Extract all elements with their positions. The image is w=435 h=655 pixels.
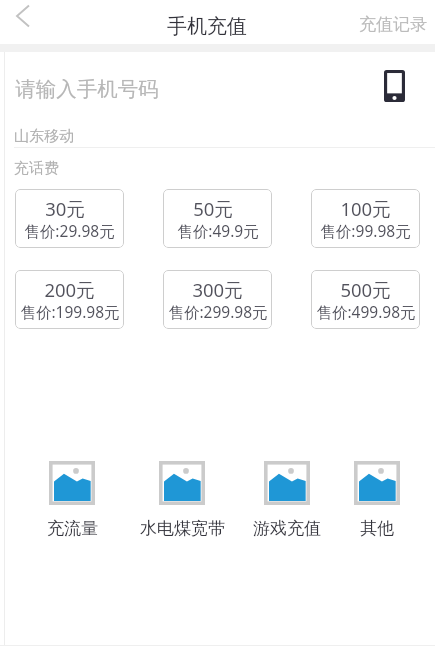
staticText: 其他 bbox=[360, 518, 394, 539]
staticText: 充话费 bbox=[14, 159, 59, 178]
button[interactable]: 30元 bbox=[15, 189, 124, 248]
button[interactable]: 500元 bbox=[311, 270, 420, 329]
staticText: 售价:499.98元 bbox=[316, 301, 416, 322]
button[interactable]: 其他 bbox=[327, 461, 427, 539]
staticText: 游戏充值 bbox=[253, 518, 321, 539]
button[interactable]: 100元 bbox=[311, 189, 420, 248]
staticText: 水电煤宽带 bbox=[140, 518, 225, 539]
button[interactable]: Back bbox=[0, 0, 46, 44]
button[interactable]: 游戏充值 bbox=[237, 461, 337, 539]
staticText: 售价:29.98元 bbox=[24, 220, 115, 241]
staticText: 售价:199.98元 bbox=[20, 301, 120, 322]
staticText: 手机充值 bbox=[167, 14, 247, 39]
button[interactable] bbox=[0, 52, 435, 120]
staticText: 30元 bbox=[45, 196, 85, 221]
button[interactable]: 水电煤宽带 bbox=[132, 461, 232, 539]
button[interactable]: 50元 bbox=[163, 189, 272, 248]
staticText: 300元 bbox=[192, 277, 243, 302]
button[interactable]: 200元 bbox=[15, 270, 124, 329]
staticText: 500元 bbox=[340, 277, 391, 302]
button[interactable]: 300元 bbox=[163, 270, 272, 329]
staticText: 山东移动 bbox=[14, 127, 74, 146]
staticText: 请输入手机号码 bbox=[15, 76, 159, 102]
button[interactable]: 充流量 bbox=[22, 461, 122, 539]
staticText: 售价:99.98元 bbox=[320, 220, 411, 241]
staticText: 售价:299.98元 bbox=[168, 301, 268, 322]
staticText: 50元 bbox=[193, 196, 233, 221]
staticText: 100元 bbox=[340, 196, 391, 221]
button[interactable]: Select contact bbox=[384, 70, 405, 102]
staticText: 充值记录 bbox=[359, 14, 427, 35]
button[interactable]: 充值记录 bbox=[351, 7, 435, 42]
staticText: 售价:49.9元 bbox=[177, 220, 259, 241]
staticText: 充流量 bbox=[47, 518, 98, 539]
staticText: 200元 bbox=[44, 277, 95, 302]
